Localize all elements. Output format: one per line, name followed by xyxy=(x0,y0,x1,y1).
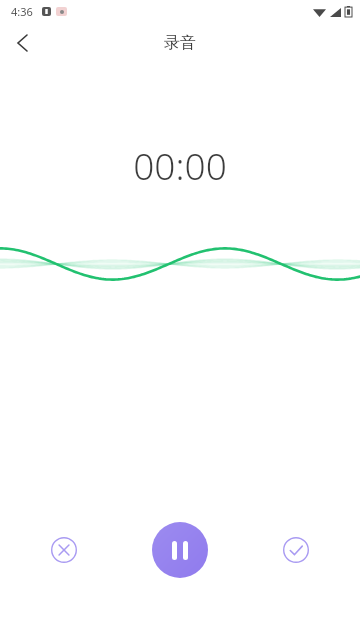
button[interactable]: Back xyxy=(0,22,44,64)
staticText: 录音 xyxy=(164,33,196,53)
staticText: 00:00 xyxy=(133,140,227,190)
staticText: 4:36 xyxy=(11,4,33,19)
button[interactable]: Finish recording xyxy=(274,528,318,572)
button[interactable]: Pause recording xyxy=(152,522,208,578)
button[interactable]: Cancel recording xyxy=(42,528,86,572)
